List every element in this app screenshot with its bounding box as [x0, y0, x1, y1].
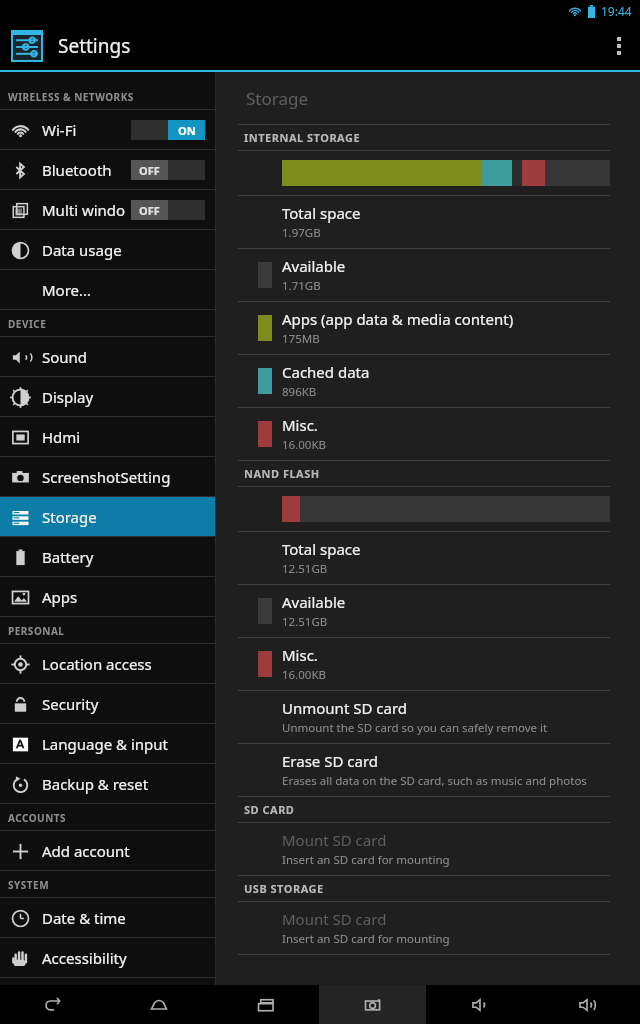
button[interactable]: Misc.	[216, 638, 640, 690]
staticText: Misc.	[282, 645, 318, 665]
button[interactable]: ScreenshotSetting	[0, 457, 215, 496]
staticText: Location access	[42, 654, 152, 674]
staticText: Apps	[42, 587, 78, 607]
button[interactable]: Bluetooth	[0, 150, 215, 189]
staticText: 1.71GB	[282, 278, 321, 294]
staticText: Available	[282, 256, 346, 276]
button[interactable]: Available	[216, 585, 640, 637]
staticText: Apps (app data & media content)	[282, 309, 514, 329]
button[interactable]: Apps (app data & media content)	[216, 302, 640, 354]
button[interactable]: More options	[598, 22, 640, 70]
staticText: 12.51GB	[282, 614, 328, 630]
button[interactable]: Total space	[216, 196, 640, 248]
button[interactable]: Backup & reset	[0, 764, 215, 803]
staticText: SD CARD	[244, 802, 295, 817]
staticText: Unmount the SD card so you can safely re…	[282, 720, 548, 736]
staticText: 896KB	[282, 384, 317, 400]
button[interactable]: Volume down	[426, 985, 533, 1024]
button[interactable]: Language & input	[0, 724, 215, 763]
staticText: Language & input	[42, 734, 168, 754]
staticText: Data usage	[42, 240, 122, 260]
button[interactable]: Apps	[0, 577, 215, 616]
staticText: Wi-Fi	[42, 120, 77, 140]
button[interactable]: Volume up	[533, 985, 640, 1024]
staticText: Cached data	[282, 362, 370, 382]
button[interactable]: Location access	[0, 644, 215, 683]
staticText: Misc.	[282, 415, 318, 435]
staticText: Unmount SD card	[282, 698, 408, 718]
staticText: 16.00KB	[282, 667, 326, 683]
staticText: Display	[42, 387, 94, 407]
button[interactable]: Cached data	[216, 355, 640, 407]
button[interactable]: Accessibility	[0, 938, 215, 977]
staticText: Storage	[246, 87, 309, 110]
staticText: Erase SD card	[282, 751, 379, 771]
staticText: WIRELESS & NETWORKS	[8, 90, 134, 104]
button[interactable]: Multi windo	[0, 190, 215, 229]
button[interactable]: Mount SD card	[216, 823, 640, 875]
staticText: PERSONAL	[8, 624, 65, 638]
staticText: Insert an SD card for mounting	[282, 852, 450, 868]
button[interactable]: Home	[106, 985, 212, 1024]
button[interactable]: Wi-Fi	[0, 110, 215, 149]
staticText: Mount SD card	[282, 909, 387, 929]
staticText: More…	[42, 280, 91, 300]
button[interactable]: Back	[0, 985, 106, 1024]
staticText: Sound	[42, 347, 88, 367]
button[interactable]: Total space	[216, 532, 640, 584]
staticText: ON	[178, 123, 196, 138]
button[interactable]: Data usage	[0, 230, 215, 269]
button[interactable]: Battery	[0, 537, 215, 576]
staticText: Hdmi	[42, 427, 81, 447]
staticText: Storage	[42, 507, 97, 527]
staticText: Backup & reset	[42, 774, 149, 794]
staticText: Add account	[42, 841, 130, 861]
staticText: Multi windo	[42, 200, 126, 220]
button[interactable]: Security	[0, 684, 215, 723]
staticText: Accessibility	[42, 948, 127, 968]
staticText: 175MB	[282, 331, 320, 347]
staticText: USB STORAGE	[244, 881, 324, 896]
staticText: Security	[42, 694, 99, 714]
button[interactable]: More…	[0, 270, 215, 309]
button[interactable]: Available	[216, 249, 640, 301]
button[interactable]: OFF	[131, 160, 205, 180]
staticText: Total space	[282, 539, 361, 559]
staticText: Mount SD card	[282, 830, 387, 850]
button[interactable]: Mount SD card	[216, 902, 640, 954]
button[interactable]: OFF	[131, 200, 205, 220]
button[interactable]: Date & time	[0, 898, 215, 937]
staticText: Erases all data on the SD card, such as …	[282, 773, 587, 789]
staticText: Battery	[42, 547, 94, 567]
staticText: ScreenshotSetting	[42, 467, 171, 487]
staticText: Insert an SD card for mounting	[282, 931, 450, 947]
button[interactable]: Storage	[0, 497, 215, 536]
button[interactable]: Add account	[0, 831, 215, 870]
staticText: DEVICE	[8, 317, 47, 331]
button[interactable]: Recent apps	[212, 985, 319, 1024]
staticText: 16.00KB	[282, 437, 326, 453]
staticText: Total space	[282, 203, 361, 223]
staticText: OFF	[139, 203, 160, 218]
button[interactable]: Screenshot	[319, 985, 426, 1024]
button[interactable]: Erase SD card	[216, 744, 640, 796]
button[interactable]: Misc.	[216, 408, 640, 460]
button[interactable]: Sound	[0, 337, 215, 376]
staticText: Settings	[58, 33, 131, 59]
staticText: Available	[282, 592, 346, 612]
staticText: Date & time	[42, 908, 126, 928]
staticText: 1.97GB	[282, 225, 321, 241]
button[interactable]: Hdmi	[0, 417, 215, 456]
staticText: SYSTEM	[8, 878, 50, 892]
button[interactable]: Display	[0, 377, 215, 416]
button[interactable]: Unmount SD card	[216, 691, 640, 743]
staticText: 12.51GB	[282, 561, 328, 577]
staticText: ACCOUNTS	[8, 811, 67, 825]
button[interactable]: ON	[131, 120, 205, 140]
staticText: 19:44	[601, 3, 632, 19]
staticText: NAND FLASH	[244, 466, 320, 481]
staticText: Bluetooth	[42, 160, 112, 180]
staticText: OFF	[139, 163, 160, 178]
staticText: INTERNAL STORAGE	[244, 130, 361, 145]
